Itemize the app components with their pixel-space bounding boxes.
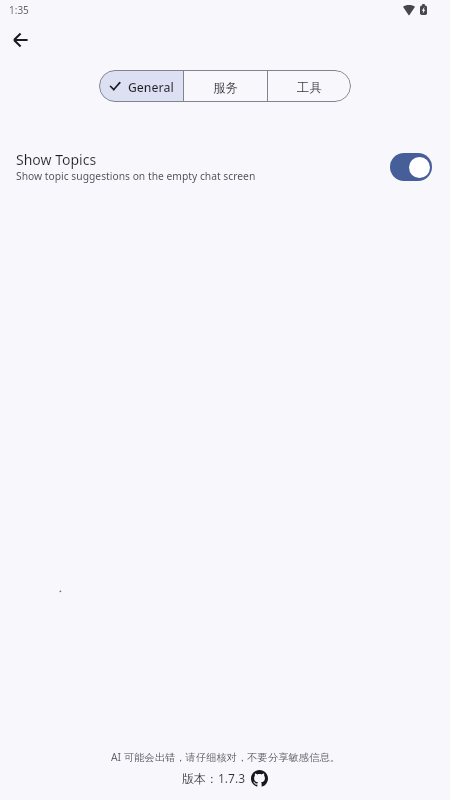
- button[interactable]: 工具: [268, 70, 351, 102]
- button[interactable]: Back: [4, 24, 36, 56]
- staticText: Show topic suggestions on the empty chat…: [16, 169, 256, 183]
- button[interactable]: General: [99, 70, 183, 102]
- staticText: AI 可能会出错，请仔细核对，不要分享敏感信息。: [111, 750, 340, 764]
- button[interactable]: Show Topics: [0, 144, 450, 189]
- staticText: 服务: [213, 80, 238, 96]
- button[interactable]: Show Topics switch, on: [390, 153, 432, 181]
- staticText: General: [128, 79, 174, 96]
- staticText: 1:35: [9, 3, 29, 17]
- button[interactable]: Open GitHub repository: [251, 770, 268, 787]
- staticText: Show Topics: [16, 150, 97, 169]
- staticText: 工具: [297, 80, 322, 96]
- staticText: 版本：1.7.3: [182, 770, 246, 786]
- button[interactable]: 服务: [184, 70, 267, 102]
